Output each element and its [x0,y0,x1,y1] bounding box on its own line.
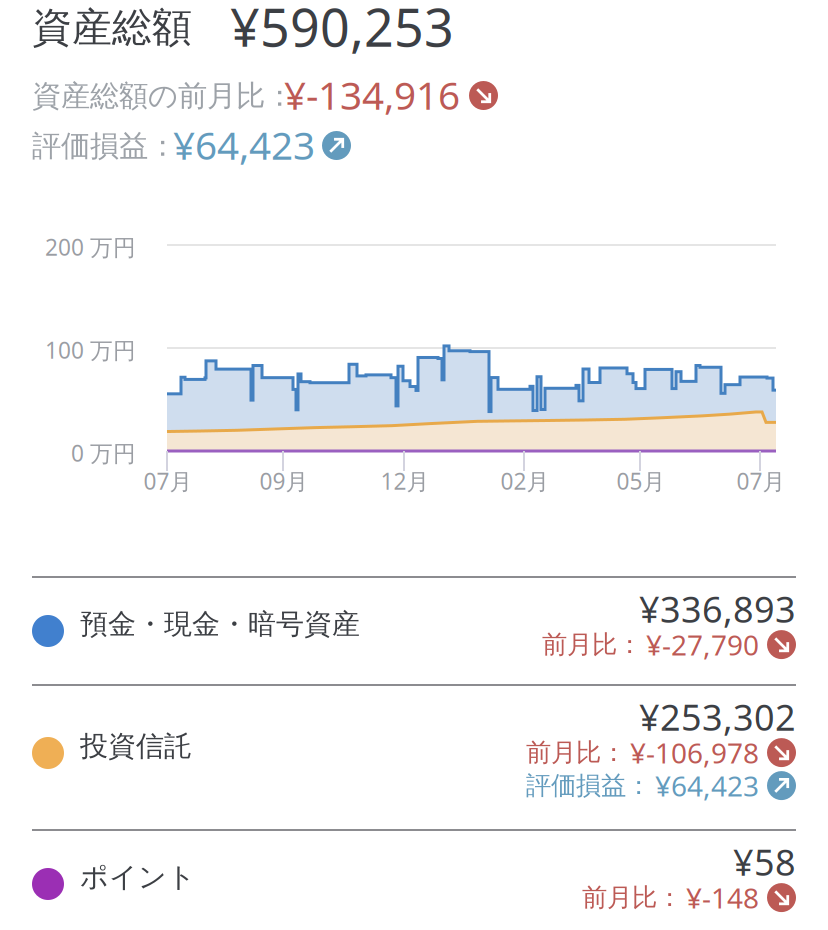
staticText: 100 万円 [45,335,136,365]
staticText: 07月 [736,466,785,496]
staticText: 02月 [500,466,549,496]
staticText: 200 万円 [45,232,136,262]
staticText: 09月 [259,466,308,496]
staticText: ¥590,253 [230,0,454,61]
staticText: 評価損益： [526,770,651,801]
staticText: 07月 [143,466,192,496]
staticText: 05月 [616,466,665,496]
staticText: 前月比： [582,882,682,913]
staticText: ¥-106,978 [630,734,759,771]
staticText: ¥-148 [686,879,759,916]
staticText: 資産総額の前月比： [32,78,294,114]
staticText: 前月比： [542,629,642,660]
staticText: 前月比： [526,737,626,768]
staticText: ポイント [80,860,196,894]
button[interactable]: 預金・現金・暗号資産 [0,578,828,684]
staticText: ¥64,423 [173,119,315,170]
staticText: ¥336,893 [639,585,796,633]
staticText: ¥-134,916 [284,69,460,120]
staticText: ¥253,302 [639,693,796,741]
staticText: ¥58 [733,838,796,886]
staticText: ¥64,423 [655,767,759,804]
button[interactable]: 投資信託 [0,686,828,829]
staticText: 投資信託 [80,729,192,763]
staticText: 12月 [380,466,429,496]
staticText: 0 万円 [71,438,136,468]
staticText: 資産総額 [32,3,192,52]
staticText: 預金・現金・暗号資産 [80,607,360,641]
staticText: ¥-27,790 [646,626,759,663]
staticText: 評価損益： [32,128,177,164]
button[interactable]: ポイント [0,831,828,930]
